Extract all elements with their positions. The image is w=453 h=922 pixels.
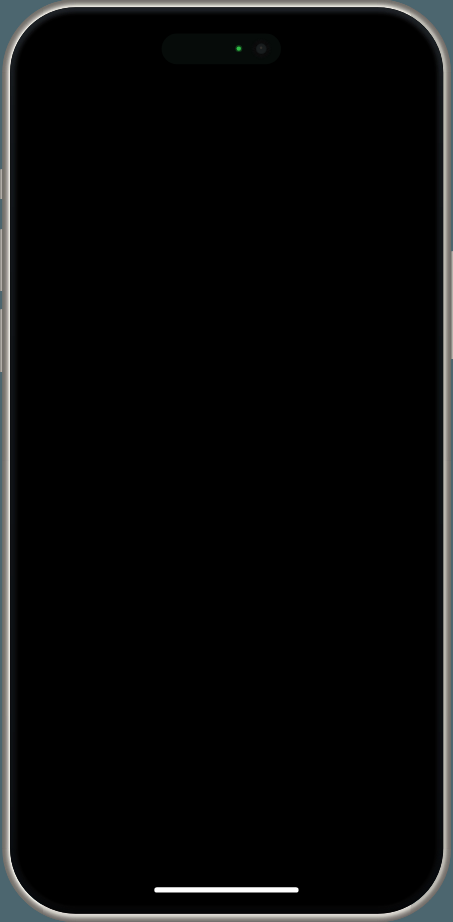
button[interactable]: Power button — [449, 251, 453, 359]
button[interactable]: Volume up — [0, 229, 4, 291]
button[interactable]: Phone screen — [10, 13, 444, 914]
button[interactable]: Volume down — [0, 309, 4, 372]
button[interactable]: Action button — [0, 169, 4, 199]
